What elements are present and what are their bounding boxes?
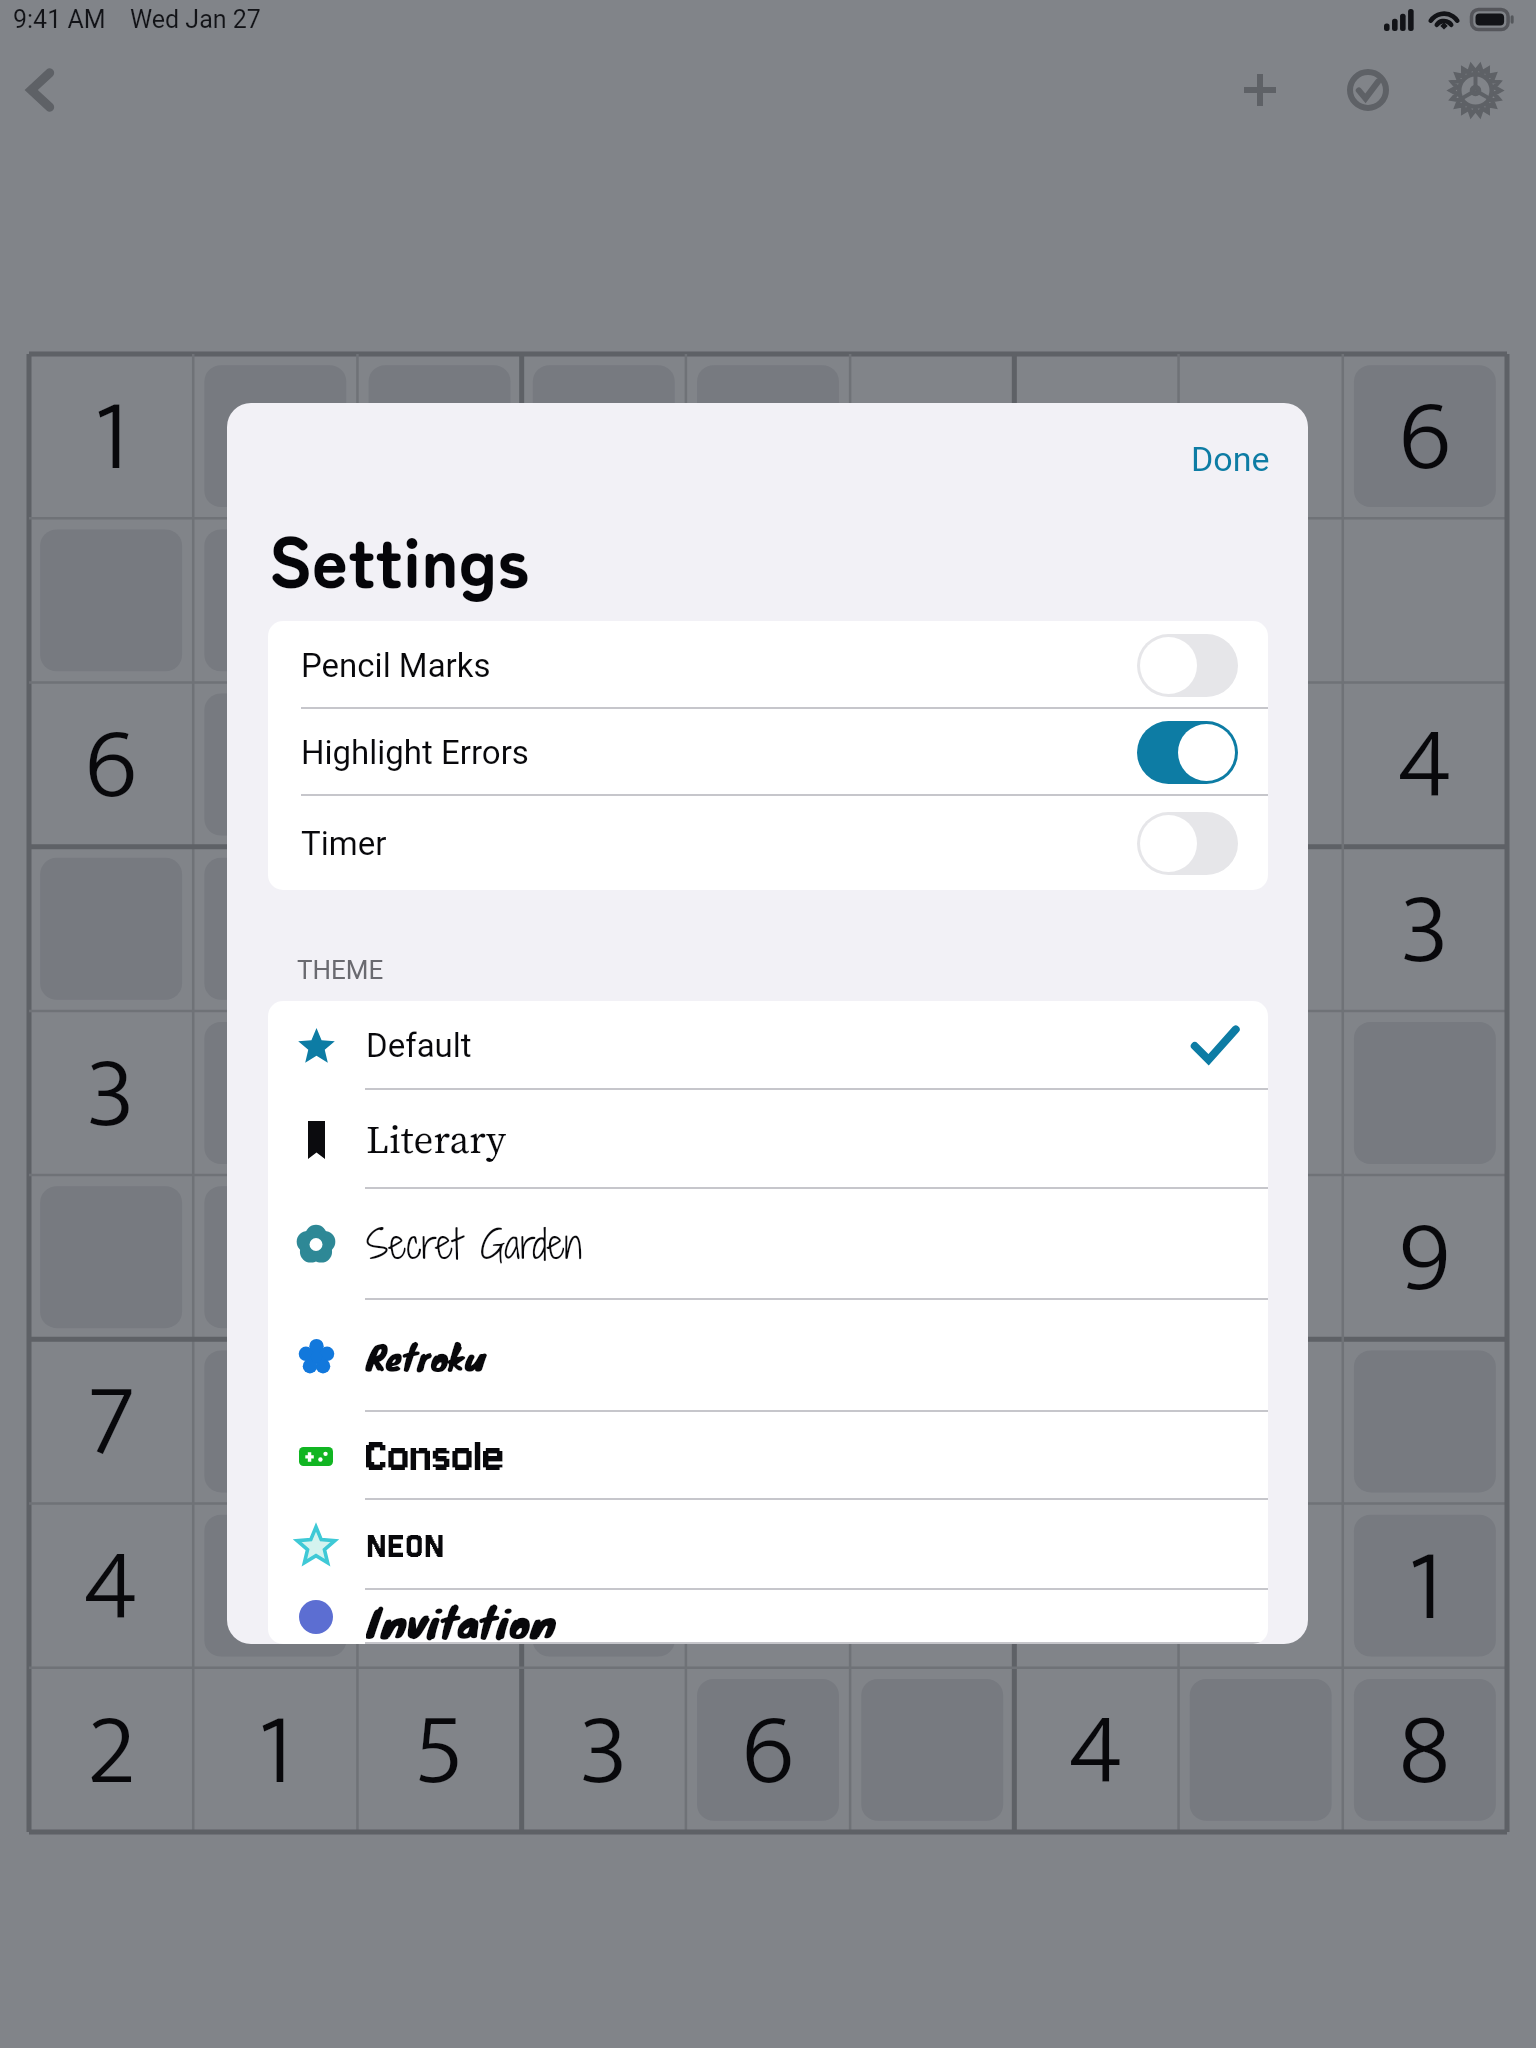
staticText: Console <box>366 1428 506 1484</box>
staticText: THEME <box>297 955 384 985</box>
button[interactable]: Secret Garden <box>268 1189 1268 1300</box>
staticText: 4 <box>1398 682 1453 846</box>
button[interactable]: Highlight Errors <box>268 709 1268 796</box>
button[interactable]: Invitation <box>268 1590 1268 1644</box>
staticText: 3 <box>86 1011 136 1175</box>
staticText: Invitation <box>366 1590 557 1644</box>
button[interactable]: Timer <box>268 796 1268 890</box>
staticText: 5 <box>413 1668 465 1832</box>
button[interactable]: NEON <box>268 1500 1268 1590</box>
staticText: 6 <box>1399 354 1451 518</box>
staticText: 8 <box>1399 1668 1451 1832</box>
button[interactable]: Retroku <box>268 1300 1268 1412</box>
button[interactable]: Back <box>0 44 80 136</box>
button[interactable]: Settings <box>1420 44 1530 136</box>
staticText: 4 <box>1069 1668 1124 1832</box>
staticText: Timer <box>301 824 387 863</box>
staticText: Highlight Errors <box>301 733 529 772</box>
staticText: 1 <box>1407 1504 1443 1668</box>
staticText: Settings <box>268 507 530 608</box>
button[interactable]: Pencil Marks <box>268 621 1268 709</box>
button[interactable]: Default <box>268 1001 1268 1090</box>
staticText: 3 <box>1400 847 1450 1011</box>
button[interactable]: Add <box>1203 44 1316 136</box>
staticText: 6 <box>85 682 137 846</box>
button[interactable]: Check <box>1316 44 1420 136</box>
staticText: 9 <box>1399 1175 1451 1339</box>
staticText: Default <box>366 1026 472 1065</box>
staticText: 4 <box>84 1504 139 1668</box>
button[interactable]: Literary <box>268 1090 1268 1189</box>
staticText: Pencil Marks <box>301 646 491 685</box>
staticText: 2 <box>87 1668 136 1832</box>
staticText: Wed Jan 27 <box>130 5 261 34</box>
staticText: Done <box>1191 439 1270 479</box>
staticText: 7 <box>86 1339 136 1503</box>
staticText: NEON <box>366 1527 445 1564</box>
staticText: Literary <box>366 1113 507 1166</box>
button[interactable]: Console <box>268 1412 1268 1500</box>
staticText: 1 <box>93 354 129 518</box>
staticText: 1 <box>257 1668 293 1832</box>
button[interactable]: Done <box>1182 428 1278 490</box>
staticText: 9:41 AM <box>13 5 106 34</box>
staticText: 3 <box>579 1668 629 1832</box>
staticText: Retroku <box>366 1330 486 1383</box>
staticText: Secret Garden <box>366 1217 582 1272</box>
staticText: 6 <box>742 1668 794 1832</box>
